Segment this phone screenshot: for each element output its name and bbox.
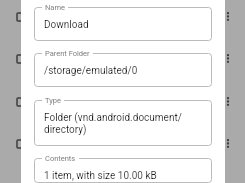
button[interactable]: Select item [17,13,25,21]
staticText: Contents [45,154,76,163]
button[interactable]: Name [34,7,212,41]
button[interactable]: Select item [17,98,25,106]
button[interactable]: Type [34,100,212,146]
staticText: Type [45,96,61,105]
button[interactable]: More options [219,38,237,80]
button[interactable]: More options [219,0,237,38]
button[interactable]: More options [219,123,237,165]
staticText: Download [44,19,89,31]
button[interactable]: More options [219,81,237,123]
button[interactable]: Contents [34,158,212,183]
staticText: /storage/emulated/0 [44,65,138,77]
staticText: Name [45,3,65,12]
staticText: Folder (vnd.android.document/ directory) [44,112,182,136]
button[interactable]: Select item [17,55,25,63]
button[interactable]: Select item [17,140,25,148]
staticText: 1 item, with size 10.00 kB [44,170,157,182]
staticText: Parent Folder [45,49,90,58]
button[interactable]: Parent Folder [34,53,212,87]
